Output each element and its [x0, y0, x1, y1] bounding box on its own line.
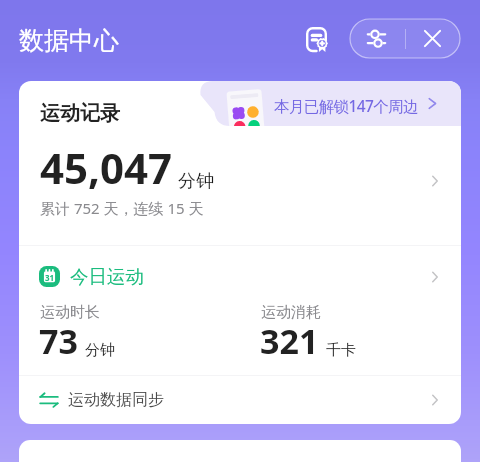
staticText: 数据中心 [19, 25, 119, 56]
staticText: 千卡 [326, 341, 356, 360]
staticText: 45,047 [40, 139, 173, 196]
staticText: 运动时长 [40, 303, 100, 322]
button[interactable]: 运动数据同步 [19, 376, 461, 424]
staticText: 本月已解锁147个周边 [274, 95, 418, 116]
button[interactable]: Filter settings [350, 19, 460, 58]
button[interactable]: 45,047 [19, 137, 461, 225]
staticText: 分钟 [178, 170, 214, 193]
staticText: 分钟 [85, 341, 115, 360]
other: Filter settings [367, 29, 386, 48]
staticText: 运动消耗 [261, 303, 321, 322]
staticText: 73 [39, 318, 78, 364]
staticText: 运动数据同步 [68, 390, 164, 410]
staticText: 运动记录 [40, 101, 120, 126]
other: Close [423, 29, 442, 48]
button[interactable]: 本月已解锁147个周边 [180, 81, 461, 126]
staticText: 今日运动 [70, 265, 144, 288]
staticText: 累计 752 天，连续 15 天 [40, 198, 204, 218]
button[interactable]: 31 [19, 248, 461, 305]
button[interactable]: Certificate [296, 19, 336, 59]
staticText: 321 [260, 318, 319, 364]
staticText: 31 [45, 272, 55, 283]
